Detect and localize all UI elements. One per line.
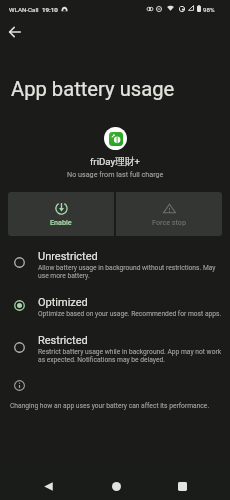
button[interactable]: Force stop bbox=[116, 192, 222, 236]
button[interactable]: Back bbox=[32, 473, 64, 499]
staticText: Optimize based on your usage. Recommende… bbox=[38, 310, 222, 318]
button[interactable]: Recents bbox=[166, 473, 198, 499]
button[interactable]: Restricted bbox=[0, 332, 230, 378]
button[interactable]: Unrestricted bbox=[0, 248, 230, 294]
button[interactable]: Home bbox=[100, 473, 132, 499]
button[interactable]: Enable bbox=[8, 192, 114, 236]
staticText: Allow battery usage in background withou… bbox=[38, 264, 222, 280]
button[interactable]: Optimized bbox=[0, 294, 230, 333]
staticText: App battery usage bbox=[11, 77, 175, 101]
staticText: Optimized bbox=[38, 296, 88, 309]
staticText: Enable bbox=[50, 218, 72, 226]
staticText: Restricted bbox=[38, 334, 88, 347]
staticText: 98% bbox=[203, 6, 215, 13]
staticText: 19:10 bbox=[42, 6, 58, 13]
staticText: Restrict battery usage while in backgrou… bbox=[38, 348, 222, 364]
staticText: No usage from last full charge bbox=[67, 170, 164, 178]
staticText: WLAN-Call bbox=[9, 6, 39, 13]
staticText: friDay理財+ bbox=[90, 156, 141, 168]
staticText: Force stop bbox=[152, 218, 186, 226]
button[interactable]: Back bbox=[3, 20, 27, 44]
staticText: Unrestricted bbox=[38, 250, 98, 263]
staticText: Changing how an app uses your battery ca… bbox=[10, 402, 210, 410]
